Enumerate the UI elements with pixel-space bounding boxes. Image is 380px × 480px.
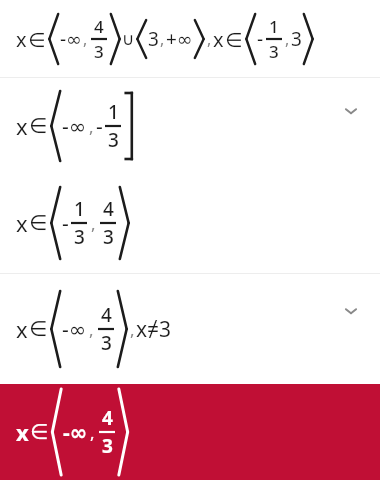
staticText: , <box>89 115 94 138</box>
staticText: ∈ <box>225 28 243 51</box>
staticText: 3 <box>102 433 113 459</box>
staticText: x <box>16 111 28 141</box>
staticText: , <box>90 421 95 444</box>
button[interactable]: x <box>0 78 380 173</box>
staticText: 3 <box>103 224 114 250</box>
staticText: , <box>130 318 135 341</box>
staticText: 3 <box>291 26 302 52</box>
staticText: ∈ <box>28 28 46 51</box>
staticText: - <box>62 209 69 238</box>
staticText: 4 <box>103 196 114 222</box>
button[interactable]: x <box>0 274 380 384</box>
staticText: ∈ <box>29 211 48 235</box>
staticText: 4 <box>102 405 113 431</box>
staticText: 3 <box>108 127 119 153</box>
staticText: ∪ <box>122 29 135 49</box>
staticText: 3 <box>94 40 104 63</box>
staticText: x <box>16 208 28 238</box>
staticText: 3 <box>74 224 85 250</box>
button[interactable]: Expand solution <box>340 300 362 322</box>
staticText: ∈ <box>29 114 48 138</box>
staticText: x <box>16 417 29 447</box>
staticText: x <box>16 314 28 344</box>
staticText: x <box>16 26 27 53</box>
staticText: , <box>160 28 165 50</box>
staticText: , <box>285 28 290 50</box>
staticText: ∈ <box>29 317 48 341</box>
staticText: 3 <box>269 40 279 63</box>
staticText: , <box>89 318 94 341</box>
button[interactable]: x <box>0 384 380 480</box>
button[interactable]: x <box>0 173 380 273</box>
button[interactable]: x <box>0 0 380 77</box>
staticText: , <box>91 212 96 235</box>
staticText: +∞ <box>166 26 193 52</box>
staticText: - <box>96 112 103 141</box>
staticText: x≠3 <box>136 315 172 344</box>
staticText: 3 <box>101 330 112 356</box>
staticText: 1 <box>74 196 85 222</box>
staticText: x <box>213 26 224 53</box>
staticText: -∞ <box>62 112 87 141</box>
button[interactable]: Expand solution <box>340 100 362 122</box>
staticText: 1 <box>269 15 279 38</box>
staticText: , <box>207 28 212 50</box>
staticText: 4 <box>94 15 104 38</box>
staticText: 3 <box>148 26 159 52</box>
staticText: - <box>257 26 264 52</box>
staticText: -∞ <box>62 315 87 344</box>
staticText: -∞ <box>63 418 88 447</box>
staticText: , <box>83 28 88 50</box>
staticText: ∈ <box>30 420 49 444</box>
staticText: -∞ <box>60 26 82 52</box>
staticText: 4 <box>101 302 112 328</box>
staticText: 1 <box>108 99 119 125</box>
